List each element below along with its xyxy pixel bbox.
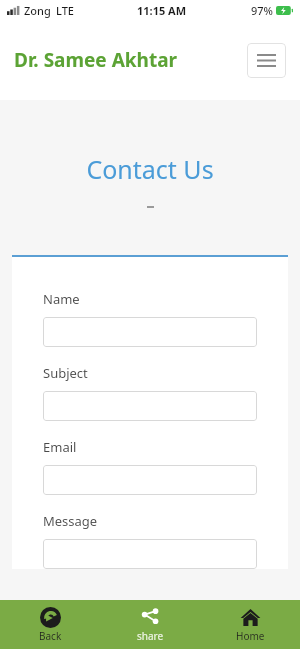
button[interactable] [43,317,257,347]
staticText: Home [236,629,265,643]
staticText: 97% [251,3,273,18]
button[interactable]: Back [0,607,100,643]
staticText: Message [43,512,98,530]
button[interactable]: Dr. Samee Akhtar [14,47,178,73]
staticText: Contact Us [0,152,300,186]
staticText: Name [43,290,80,308]
button[interactable]: Home [200,607,300,643]
button[interactable] [43,539,257,569]
staticText: Back [39,629,62,643]
button[interactable]: Menu [247,43,286,78]
button[interactable]: share [100,607,200,643]
staticText: share [137,629,164,643]
staticText: 11:15 AM [137,3,187,18]
staticText: Zong [24,3,51,18]
button[interactable] [43,391,257,421]
staticText: LTE [56,3,74,18]
staticText: Email [43,438,77,456]
button[interactable] [43,465,257,495]
staticText: Subject [43,364,88,382]
